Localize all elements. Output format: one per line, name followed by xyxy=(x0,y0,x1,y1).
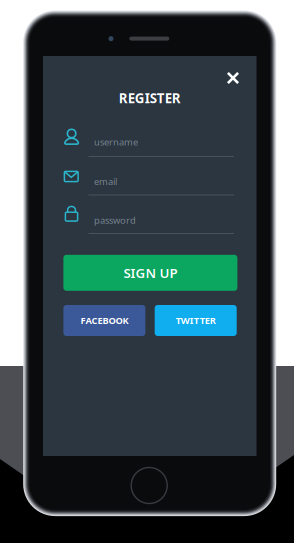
button[interactable]: Close xyxy=(217,62,249,94)
button[interactable]: TWITTER xyxy=(155,305,237,336)
staticText: password xyxy=(94,214,136,226)
staticText: TWITTER xyxy=(176,314,216,327)
staticText: REGISTER xyxy=(119,89,181,107)
staticText: FACEBOOK xyxy=(80,314,128,327)
button[interactable]: FACEBOOK xyxy=(63,305,145,336)
staticText: username xyxy=(94,136,138,148)
button[interactable]: SIGN UP xyxy=(63,255,237,291)
staticText: SIGN UP xyxy=(123,264,177,282)
staticText: email xyxy=(94,175,117,187)
